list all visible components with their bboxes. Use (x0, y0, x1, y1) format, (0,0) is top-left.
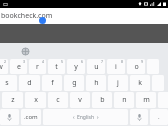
staticText: 7 (101, 59, 104, 64)
staticText: m (143, 95, 150, 105)
staticText: y (74, 62, 78, 72)
staticText: 8 (121, 59, 124, 64)
staticText: w (0, 62, 3, 72)
staticText: o (134, 62, 139, 72)
button[interactable]: i (107, 59, 125, 74)
button[interactable]: c (48, 92, 68, 108)
staticText: 9 (141, 59, 144, 64)
staticText: b (100, 95, 105, 105)
staticText: k (138, 78, 142, 88)
button[interactable]: j (108, 75, 128, 91)
staticText: 2 (4, 59, 7, 64)
button[interactable]: x (25, 92, 46, 108)
button[interactable]: d (19, 75, 40, 91)
staticText: i (115, 62, 117, 72)
button[interactable]: v (70, 92, 90, 108)
staticText: d (27, 78, 32, 88)
button[interactable]: Change language (19, 45, 31, 57)
staticText: 4 (42, 59, 45, 64)
button[interactable]: .com (21, 109, 41, 125)
staticText: bookcheck.com (1, 11, 53, 21)
staticText: g (72, 78, 77, 88)
staticText: x (34, 95, 38, 105)
button[interactable]: u (87, 59, 105, 74)
staticText: c (56, 95, 60, 105)
button[interactable]: z (2, 92, 23, 108)
button[interactable]: o (127, 59, 145, 74)
button[interactable]: m (136, 92, 156, 108)
button[interactable]: g (64, 75, 84, 91)
button[interactable]: w (0, 59, 8, 74)
button[interactable]: Voice input (130, 109, 148, 125)
button[interactable]: h (86, 75, 106, 91)
button[interactable]: b (92, 92, 112, 108)
button[interactable]: . (150, 109, 168, 125)
button[interactable]: f (42, 75, 62, 91)
button[interactable]: y (67, 59, 85, 74)
button[interactable]: Symbols (0, 109, 19, 125)
staticText: r (36, 62, 39, 72)
button[interactable]: e (10, 59, 27, 74)
staticText: . (158, 113, 160, 121)
staticText: j (117, 78, 119, 88)
button[interactable]: ‹ (43, 109, 128, 125)
staticText: n (122, 95, 127, 105)
staticText: e (17, 62, 21, 72)
staticText: 6 (81, 59, 84, 64)
button[interactable]: k (130, 75, 150, 91)
button[interactable]: bookcheck.com (0, 8, 168, 24)
staticText: › (97, 114, 99, 121)
staticText: z (11, 95, 15, 105)
button[interactable]: s (0, 75, 17, 91)
staticText: ‹ (73, 114, 75, 121)
button[interactable]: n (114, 92, 134, 108)
staticText: s (5, 78, 9, 88)
staticText: 3 (23, 59, 26, 64)
staticText: f (51, 78, 54, 88)
staticText: English (77, 114, 95, 121)
staticText: v (78, 95, 82, 105)
staticText: u (94, 62, 99, 72)
button[interactable]: r (29, 59, 46, 74)
staticText: .com (24, 113, 38, 121)
staticText: t (55, 62, 58, 72)
button[interactable]: t (48, 59, 65, 74)
staticText: h (94, 78, 99, 88)
staticText: 5 (61, 59, 64, 64)
